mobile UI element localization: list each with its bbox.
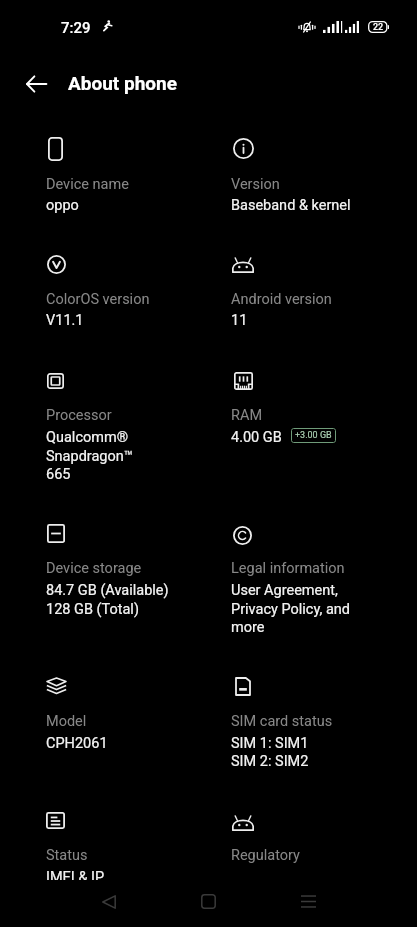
staticText: Snapdragon™ [46, 448, 133, 465]
button[interactable] [46, 133, 218, 215]
button[interactable] [46, 673, 218, 752]
staticText: 128 GB (Total) [46, 601, 139, 618]
staticText: IMEI & IP [46, 869, 105, 880]
staticText: Baseband & kernel [231, 197, 351, 214]
staticText: 84.7 GB (Available) [46, 582, 169, 599]
staticText: 4.00 GB [231, 429, 282, 446]
button[interactable] [231, 522, 391, 636]
staticText: About phone [68, 72, 177, 94]
staticText: SIM 2: SIM2 [231, 753, 309, 770]
button[interactable] [231, 133, 391, 215]
staticText: Processor [46, 407, 112, 424]
staticText: Legal information [231, 560, 345, 577]
button[interactable]: Back [14, 61, 59, 106]
button[interactable] [231, 369, 391, 447]
staticText: Android version [231, 291, 332, 308]
button[interactable]: Recent apps [269, 878, 347, 925]
staticText: SIM 1: SIM1 [231, 735, 309, 752]
staticText: Device name [46, 176, 129, 193]
staticText: Privacy Policy, and [231, 601, 351, 618]
button[interactable] [46, 810, 218, 880]
staticText: 11 [231, 312, 248, 329]
staticText: RAM [231, 407, 263, 424]
button[interactable] [231, 810, 391, 880]
button[interactable]: +3.00 GB [291, 428, 336, 443]
staticText: 7:29 [61, 19, 91, 37]
staticText: Regulatory [231, 847, 300, 864]
staticText: 22 [373, 22, 384, 33]
staticText: Model [46, 713, 87, 730]
staticText: Qualcomm® [46, 429, 129, 446]
staticText: oppo [46, 197, 79, 214]
staticText: V11.1 [46, 312, 84, 329]
button[interactable] [46, 522, 218, 618]
staticText: SIM card status [231, 713, 333, 730]
staticText: User Agreement, [231, 582, 338, 599]
button[interactable] [46, 369, 218, 483]
staticText: 665 [46, 466, 71, 483]
button[interactable] [231, 251, 391, 330]
staticText: Device storage [46, 560, 142, 577]
staticText: more [231, 619, 265, 636]
staticText: Version [231, 176, 280, 193]
button[interactable] [231, 673, 391, 770]
staticText: ColorOS version [46, 291, 150, 308]
button[interactable] [46, 251, 218, 330]
button[interactable]: Home [169, 878, 247, 925]
staticText: +3.00 GB [295, 430, 332, 441]
staticText: Status [46, 847, 88, 864]
button[interactable]: Back [70, 878, 148, 925]
staticText: CPH2061 [46, 735, 108, 752]
